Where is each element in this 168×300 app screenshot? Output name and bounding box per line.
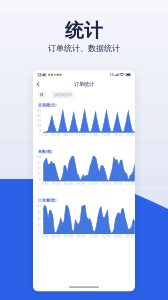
button[interactable]: Back	[35, 80, 41, 88]
staticText: 60	[37, 114, 41, 117]
staticText: 12:00	[89, 182, 98, 185]
staticText: 15:00	[101, 235, 110, 238]
staticText: 60	[37, 204, 41, 208]
staticText: 0	[39, 178, 41, 181]
staticText: 03:00	[52, 235, 61, 238]
staticText: 交易额(元)	[38, 102, 56, 108]
button[interactable]: 2023-02-01	[52, 91, 74, 99]
staticText: 06:00	[64, 182, 73, 185]
staticText: 18:00	[113, 235, 122, 238]
staticText: 20	[37, 124, 41, 128]
staticText: 5G	[110, 73, 114, 76]
staticText: 0	[39, 230, 41, 234]
staticText: 0:00	[41, 133, 48, 137]
staticText: 06:00	[64, 133, 73, 137]
staticText: 45	[37, 211, 41, 214]
staticText: 06:00	[64, 235, 73, 238]
staticText: 21:00	[126, 235, 135, 238]
staticText: 21:00	[126, 133, 135, 137]
staticText: 80	[37, 109, 41, 112]
staticText: 09:00	[76, 133, 85, 137]
staticText: 统计	[65, 19, 103, 42]
staticText: 订单统计	[74, 81, 94, 88]
staticText: 30	[37, 167, 41, 170]
staticText: 0:00	[41, 235, 48, 238]
staticText: 12:00	[89, 235, 98, 238]
staticText: 18:00	[113, 133, 122, 137]
staticText: 09:00	[76, 182, 85, 185]
staticText: 单数(笔)	[38, 149, 52, 154]
staticText: 订单量(笔)	[38, 198, 56, 203]
staticText: 2023-02-01	[54, 92, 72, 97]
staticText: 15:00	[101, 182, 110, 185]
staticText: 30	[37, 217, 41, 221]
staticText: 15	[37, 224, 41, 227]
staticText: 0	[39, 129, 41, 133]
staticText: 12:00	[89, 133, 98, 137]
staticText: 15	[37, 172, 41, 176]
staticText: 60	[37, 155, 41, 159]
staticText: 45	[37, 161, 41, 164]
staticText: 09:00	[76, 235, 85, 238]
staticText: -	[48, 93, 49, 96]
staticText: 03:00	[52, 133, 61, 137]
staticText: 订单统计、数据统计	[48, 43, 120, 53]
staticText: 21:00	[126, 182, 135, 185]
staticText: 15:00	[101, 133, 110, 137]
staticText: 40	[37, 119, 41, 122]
staticText: 12:46	[37, 72, 46, 77]
staticText: 0:00	[41, 182, 48, 185]
staticText: 03:00	[52, 182, 61, 185]
staticText: 日	[40, 92, 44, 97]
button[interactable]: 日	[37, 91, 46, 98]
staticText: 18:00	[113, 182, 122, 185]
